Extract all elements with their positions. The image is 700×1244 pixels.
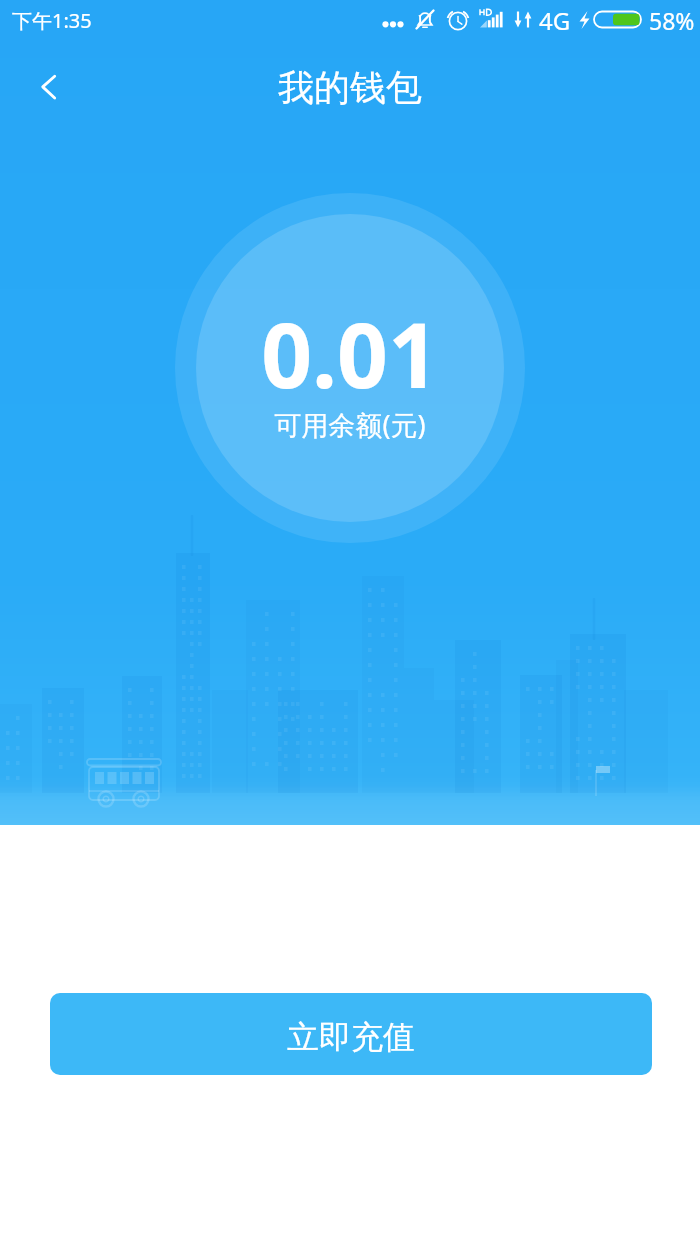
staticText: 立即充值: [287, 1017, 415, 1057]
staticText: 可用余额(元): [0, 406, 700, 443]
button[interactable]: Back: [13, 57, 73, 117]
staticText: 我的钱包: [278, 65, 422, 110]
staticText: 0.01: [0, 293, 700, 414]
staticText: 4G: [539, 4, 571, 37]
staticText: 下午1:35: [12, 7, 92, 34]
staticText: 58%: [649, 5, 695, 36]
button[interactable]: 立即充值: [50, 993, 652, 1075]
